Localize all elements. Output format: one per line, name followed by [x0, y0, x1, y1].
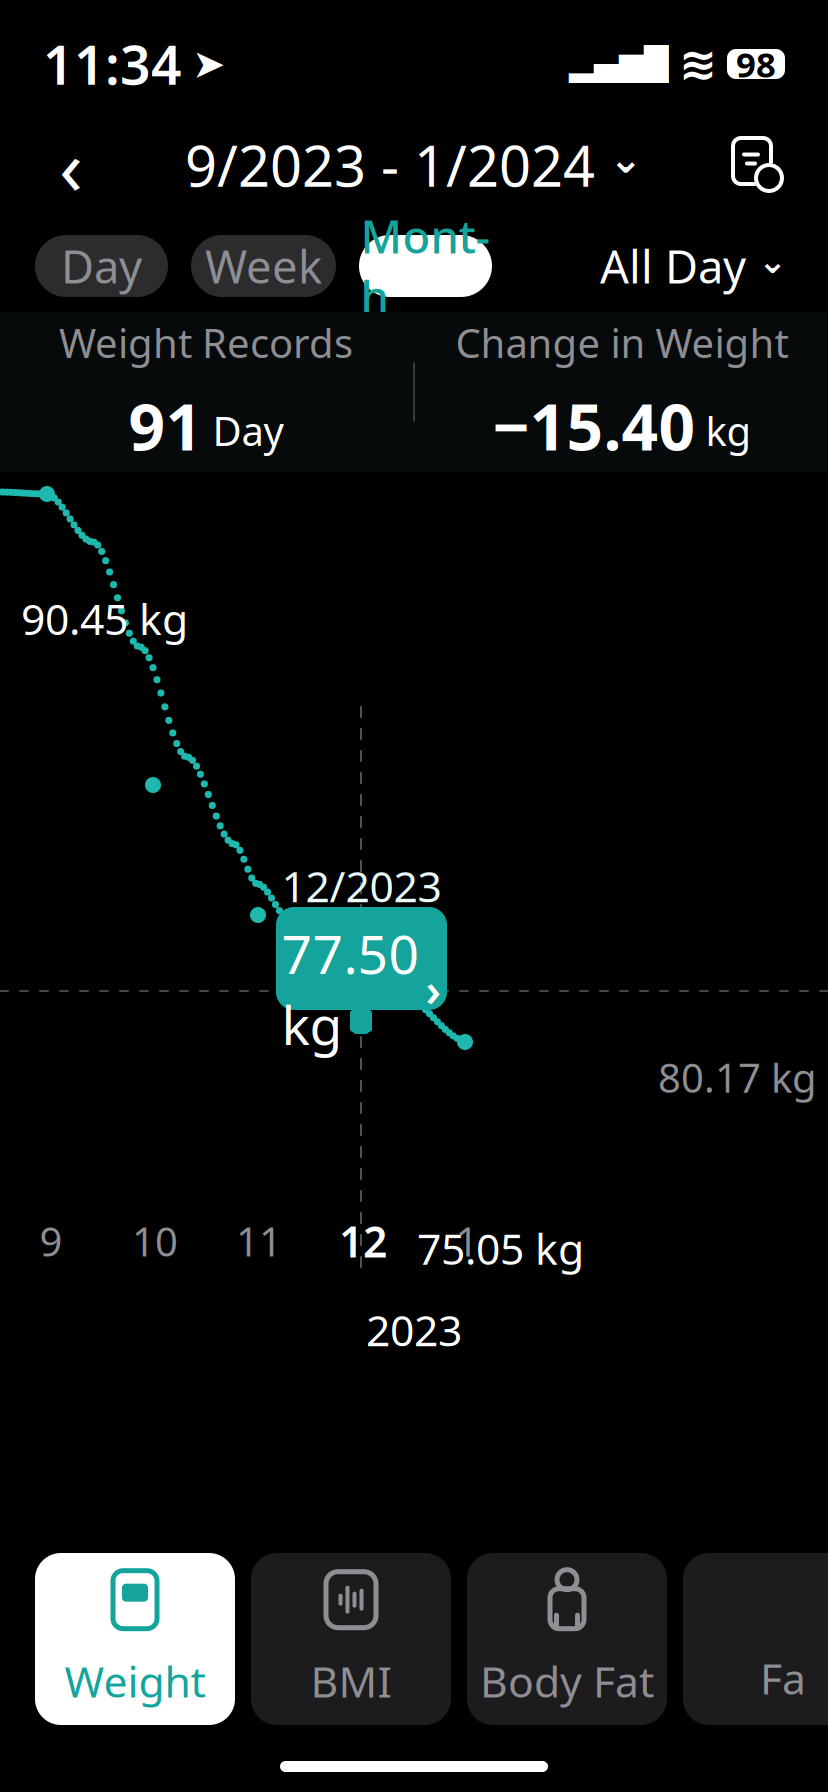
- staticText: ≋: [679, 38, 717, 90]
- staticText: Body Fat: [480, 1653, 654, 1709]
- staticText: −15.40: [492, 383, 695, 468]
- staticText: 10: [132, 1214, 178, 1268]
- button[interactable]: Weight: [35, 1553, 235, 1725]
- staticText: ›: [425, 959, 441, 1019]
- staticText: ⌄: [609, 136, 643, 182]
- staticText: All Day: [600, 236, 746, 296]
- staticText: Fa: [760, 1650, 806, 1706]
- staticText: 1: [455, 1214, 478, 1268]
- staticText: ➤: [192, 41, 226, 87]
- staticText: 98: [736, 41, 776, 87]
- button[interactable]: Day: [35, 235, 168, 297]
- staticText: 12: [339, 1213, 387, 1269]
- button[interactable]: Week: [191, 235, 336, 297]
- button[interactable]: Back: [29, 123, 113, 207]
- staticText: BMI: [310, 1653, 391, 1709]
- staticText: 11:34: [43, 29, 182, 99]
- button[interactable]: Body Fat: [467, 1553, 667, 1725]
- staticText: 11: [236, 1214, 282, 1268]
- staticText: Week: [205, 236, 322, 296]
- staticText: ▂▄▆█: [569, 46, 669, 82]
- staticText: kg: [705, 404, 751, 457]
- button[interactable]: 12/2023: [276, 907, 447, 1010]
- staticText: 80.17 kg: [658, 1051, 817, 1104]
- staticText: Day: [212, 404, 283, 457]
- staticText: ‹: [59, 114, 83, 216]
- staticText: 91: [128, 383, 202, 468]
- staticText: 77.50 kg: [281, 918, 419, 1060]
- staticText: 9: [39, 1214, 62, 1268]
- staticText: Month: [360, 206, 490, 326]
- button[interactable]: Fa: [683, 1553, 828, 1725]
- staticText: Weight Records: [59, 316, 353, 369]
- staticText: 75.05 kg: [417, 1220, 584, 1276]
- staticText: Change in Weight: [455, 316, 788, 369]
- staticText: Weight: [64, 1653, 205, 1709]
- staticText: 2023: [366, 1301, 462, 1358]
- button[interactable]: All Day: [594, 235, 793, 297]
- staticText: ⌄: [758, 241, 787, 281]
- button[interactable]: BMI: [251, 1553, 451, 1725]
- button[interactable]: Month: [359, 235, 492, 297]
- button[interactable]: History: [715, 123, 799, 207]
- staticText: 12/2023: [281, 857, 441, 914]
- staticText: Day: [61, 236, 142, 296]
- staticText: 90.45 kg: [21, 590, 188, 647]
- staticText: 9/2023 - 1/2024: [185, 128, 595, 202]
